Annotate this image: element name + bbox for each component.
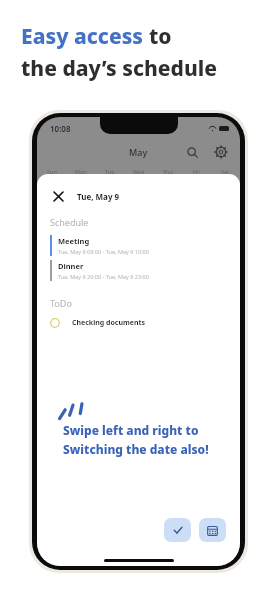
staticText: Switching the date also! <box>63 441 209 457</box>
staticText: Checking documents <box>72 318 146 328</box>
staticText: to <box>149 22 172 51</box>
button[interactable]: Settings <box>211 142 231 162</box>
staticText: Easy access <box>21 22 149 51</box>
button[interactable]: Meeting <box>50 235 240 256</box>
staticText: Tue, May 9 20:00 - Tue, May 9 23:00 <box>58 273 149 280</box>
staticText: ToDo <box>50 297 72 309</box>
staticText: Fri <box>193 168 200 175</box>
button[interactable]: Dinner <box>50 260 240 281</box>
staticText: Tue, May 9 09:00 - Tue, May 9 10:00 <box>58 248 149 255</box>
staticText: 10:08 <box>50 123 71 134</box>
staticText: the day’s schedule <box>21 54 217 83</box>
button[interactable]: Close <box>50 188 66 204</box>
staticText: Sat <box>221 168 230 175</box>
staticText: Wed <box>133 168 145 175</box>
staticText: May <box>129 146 148 158</box>
button[interactable]: Add ToDo <box>164 518 191 542</box>
staticText: Sun <box>47 168 57 175</box>
staticText: Tue <box>105 168 115 175</box>
button[interactable]: Checking documents <box>50 318 240 328</box>
staticText: Thu <box>163 168 173 175</box>
staticText: Tue, May 9 <box>77 191 120 202</box>
staticText: Swipe left and right to <box>63 422 199 438</box>
staticText: Mon <box>75 168 87 175</box>
staticText: Dinner <box>58 261 84 271</box>
button[interactable]: Search <box>182 142 202 162</box>
staticText: Schedule <box>50 216 89 228</box>
button[interactable]: Add schedule <box>199 518 226 542</box>
staticText: Meeting <box>58 236 90 246</box>
